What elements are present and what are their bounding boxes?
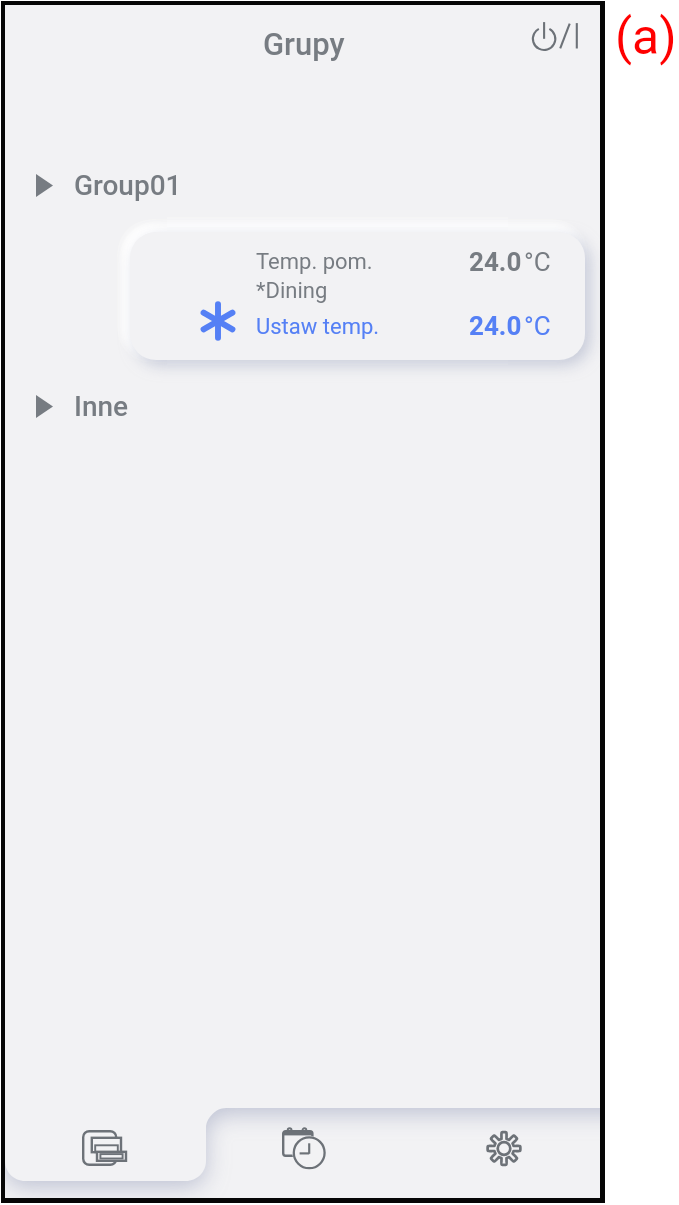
button[interactable]: Settings (465, 1109, 543, 1187)
staticText: Grupy (263, 26, 345, 62)
button[interactable]: Schedule (265, 1109, 343, 1187)
staticText: Ustaw temp. (256, 314, 380, 340)
staticText: (a) (615, 8, 677, 67)
staticText: *Dining (256, 278, 328, 304)
staticText: Temp. pom. (256, 249, 373, 275)
staticText: °C (524, 247, 551, 277)
button[interactable]: Group01 (5, 163, 600, 207)
staticText: 24.0 (469, 247, 522, 277)
button[interactable]: Groups (65, 1109, 143, 1187)
staticText: Inne (74, 390, 129, 423)
button[interactable]: Inne (5, 384, 600, 428)
staticText: 24.0 (469, 311, 522, 341)
button[interactable]: Temp. pom. (130, 232, 585, 360)
staticText: °C (524, 311, 551, 341)
button[interactable]: Power on off (518, 8, 590, 68)
staticText: Group01 (74, 169, 182, 202)
